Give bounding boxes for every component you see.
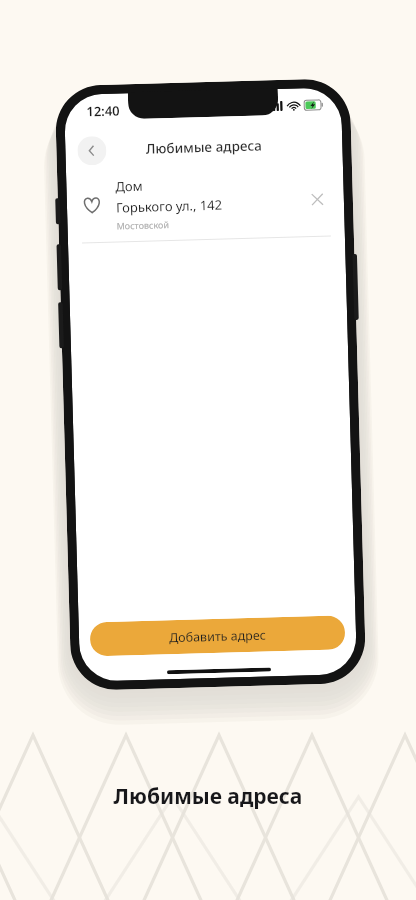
- staticText: Мостовской: [116, 218, 170, 232]
- staticText: Любимые адреса: [65, 134, 343, 160]
- staticText: 12:40: [86, 101, 121, 120]
- button[interactable]: Добавить адрес: [90, 615, 345, 656]
- staticText: Горького ул., 142: [116, 196, 223, 217]
- staticText: Любимые адреса: [0, 782, 416, 811]
- button[interactable]: Back: [77, 136, 107, 166]
- button[interactable]: Remove address: [303, 186, 330, 212]
- button[interactable]: Favorite: [66, 165, 345, 243]
- staticText: Добавить адрес: [169, 627, 266, 646]
- staticText: Дом: [115, 177, 144, 196]
- other: Favorite: [81, 194, 103, 216]
